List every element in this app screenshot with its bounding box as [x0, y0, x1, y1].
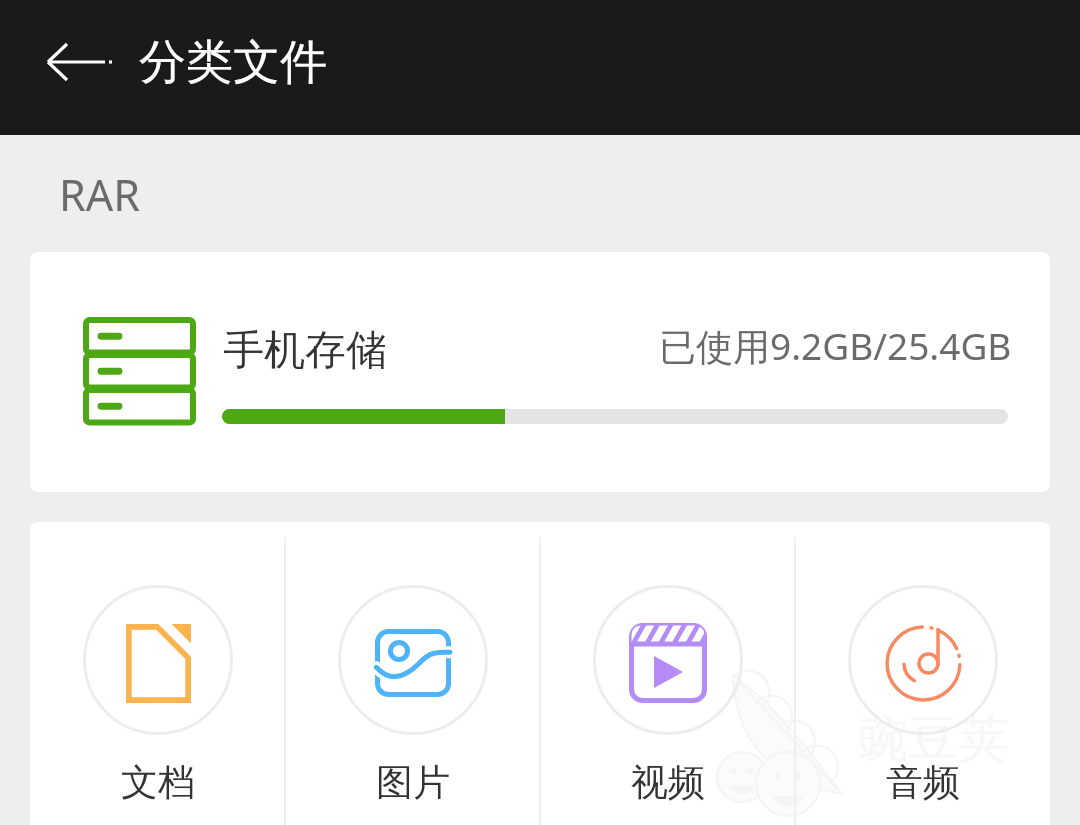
staticText: 手机存储	[223, 325, 387, 377]
button[interactable]: Back	[30, 20, 126, 116]
staticText: RAR	[59, 165, 140, 224]
button[interactable]: 文档	[30, 522, 285, 825]
staticText: 图片	[376, 759, 450, 806]
staticText: 豌豆荚	[858, 708, 1008, 771]
staticText: 已使用9.2GB/25.4GB	[659, 320, 1012, 371]
staticText: 视频	[631, 759, 705, 806]
button[interactable]: 图片	[285, 522, 540, 825]
staticText: 文档	[121, 759, 195, 806]
staticText: 音频	[886, 759, 960, 806]
button[interactable]: 手机存储	[30, 252, 1050, 492]
button[interactable]: 视频	[540, 522, 795, 825]
staticText: 分类文件	[139, 33, 327, 92]
button[interactable]: 音频	[795, 522, 1050, 825]
